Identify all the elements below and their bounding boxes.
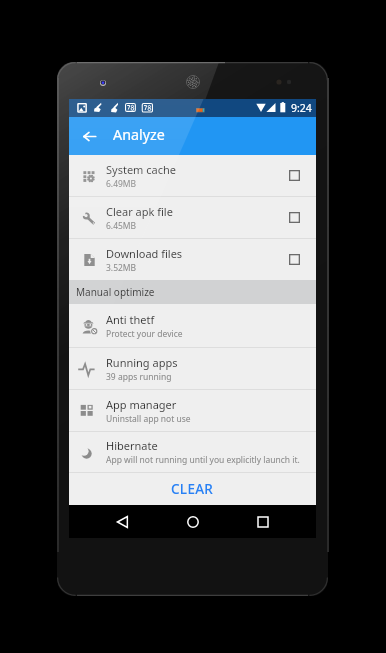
- staticText: Clear apk file: [106, 204, 173, 219]
- staticText: App will not running until you explicitl…: [106, 454, 300, 466]
- button[interactable]: App manager: [69, 390, 316, 431]
- staticText: Download files: [106, 246, 183, 261]
- button[interactable]: Anti thetf: [69, 304, 316, 347]
- staticText: 6.49MB: [106, 178, 137, 190]
- staticText: App manager: [106, 397, 177, 412]
- staticText: CLEAR: [171, 480, 214, 498]
- button[interactable]: Running apps: [69, 348, 316, 389]
- button[interactable]: System cache: [69, 155, 316, 196]
- staticText: Running apps: [106, 355, 178, 370]
- staticText: 39 apps running: [106, 371, 172, 383]
- button[interactable]: Recent apps: [246, 505, 279, 538]
- staticText: Anti thetf: [106, 312, 155, 327]
- button[interactable]: Navigate up: [71, 118, 107, 154]
- staticText: 9:24: [291, 101, 312, 115]
- staticText: Hibernate: [106, 438, 158, 453]
- button[interactable]: Home: [176, 505, 209, 538]
- button[interactable]: Download files: [69, 239, 316, 280]
- staticText: 6.45MB: [106, 220, 137, 232]
- button[interactable]: CLEAR: [69, 473, 316, 505]
- button[interactable]: Clear apk file: [69, 197, 316, 238]
- staticText: Uninstall app not use: [106, 413, 191, 425]
- button[interactable]: Hibernate: [69, 432, 316, 472]
- staticText: System cache: [106, 162, 176, 177]
- staticText: Protect your device: [106, 328, 183, 340]
- staticText: Manual optimize: [76, 285, 155, 299]
- staticText: Analyze: [113, 125, 165, 144]
- staticText: 3.52MB: [106, 262, 137, 274]
- button[interactable]: Back: [106, 505, 139, 538]
